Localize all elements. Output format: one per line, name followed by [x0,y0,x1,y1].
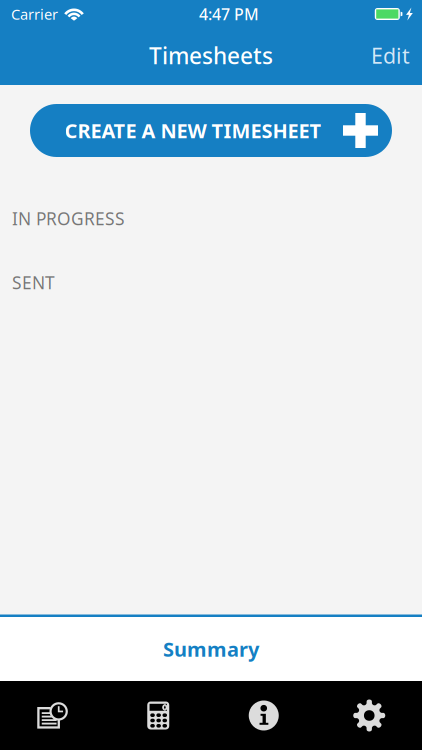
staticText: IN PROGRESS [12,207,125,230]
staticText: CREATE A NEW TIMESHEET [64,117,321,144]
staticText: Summary [163,636,259,662]
staticText: 4:47 PM [199,3,259,25]
button[interactable]: CREATE A NEW TIMESHEET [30,104,392,157]
staticText: SENT [12,271,55,294]
staticText: Timesheets [149,40,273,70]
button[interactable]: Summary [0,617,422,681]
button[interactable]: Info [211,681,316,750]
button[interactable]: Timesheets [0,681,105,750]
staticText: Edit [371,41,410,70]
button[interactable]: Calculator [105,681,211,750]
staticText: Carrier [11,4,58,24]
button[interactable]: Settings [316,681,422,750]
button[interactable]: Edit [359,33,422,80]
